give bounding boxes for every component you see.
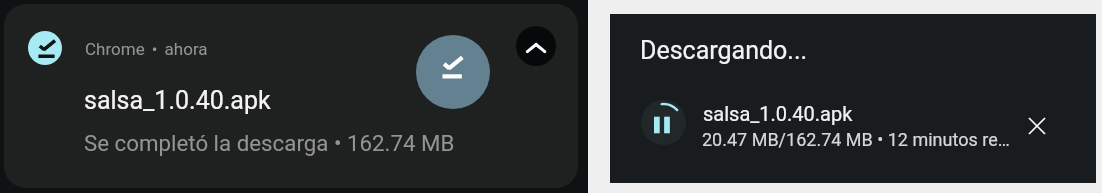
staticText: Chrome • ahora bbox=[85, 39, 208, 59]
button[interactable]: Chrome • ahora bbox=[4, 4, 578, 188]
button[interactable]: Abrir archivo descargado bbox=[416, 35, 490, 109]
button[interactable]: Pausar descarga bbox=[641, 100, 686, 145]
button[interactable]: Cerrar bbox=[1019, 108, 1055, 144]
staticText: salsa_1.0.40.apk bbox=[703, 102, 853, 125]
staticText: Descargando... bbox=[640, 36, 808, 65]
button[interactable]: Contraer notificación bbox=[516, 26, 556, 66]
staticText: 20.47 MB/162.74 MB • 12 minutos re… bbox=[702, 129, 1010, 150]
staticText: salsa_1.0.40.apk bbox=[84, 86, 271, 115]
staticText: Se completó la descarga • 162.74 MB bbox=[84, 130, 455, 156]
button[interactable]: Descargando... bbox=[610, 14, 1096, 183]
